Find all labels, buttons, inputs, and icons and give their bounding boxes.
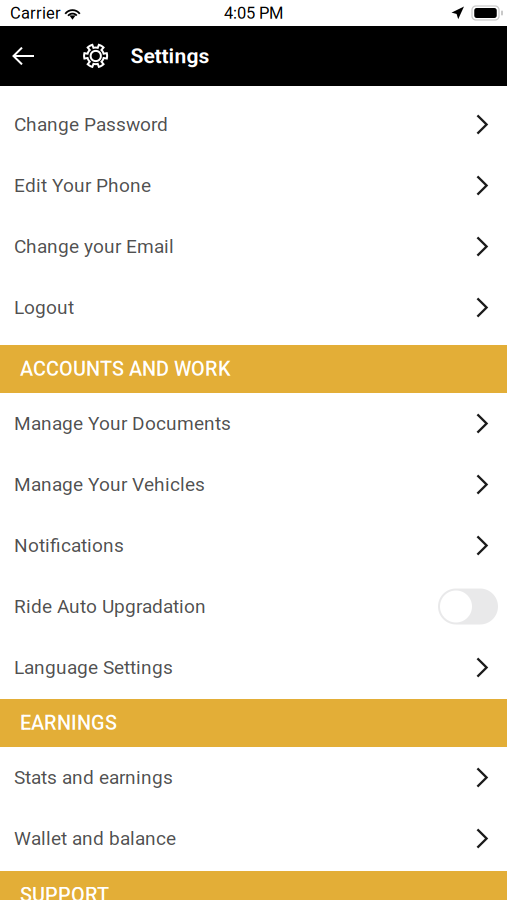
button[interactable]: Change Password: [0, 94, 507, 155]
staticText: Stats and earnings: [14, 766, 173, 789]
staticText: Settings: [130, 44, 209, 68]
staticText: Manage Your Documents: [14, 412, 231, 435]
staticText: Notifications: [14, 534, 124, 557]
staticText: SUPPORT: [20, 883, 109, 900]
button[interactable]: Stats and earnings: [0, 747, 507, 808]
button[interactable]: Notifications: [0, 515, 507, 576]
staticText: Ride Auto Upgradation: [14, 595, 206, 618]
staticText: Language Settings: [14, 656, 173, 679]
staticText: Edit Your Phone: [14, 174, 151, 197]
button[interactable]: Manage Your Documents: [0, 393, 507, 454]
staticText: Change Password: [14, 113, 168, 136]
button[interactable]: Back: [0, 26, 46, 86]
staticText: Logout: [14, 296, 74, 319]
button[interactable]: Language Settings: [0, 637, 507, 698]
button[interactable]: Manage Your Vehicles: [0, 454, 507, 515]
button[interactable]: Edit Your Phone: [0, 155, 507, 216]
staticText: ACCOUNTS AND WORK: [20, 357, 231, 381]
button[interactable]: Logout: [0, 277, 507, 338]
staticText: EARNINGS: [20, 711, 117, 735]
staticText: Manage Your Vehicles: [14, 473, 205, 496]
staticText: Carrier: [10, 3, 61, 23]
button[interactable]: Ride Auto Upgradation: [438, 588, 498, 624]
button[interactable]: Change your Email: [0, 216, 507, 277]
staticText: Wallet and balance: [14, 827, 176, 850]
button[interactable]: Wallet and balance: [0, 808, 507, 869]
staticText: Change your Email: [14, 235, 174, 258]
staticText: 4:05 PM: [224, 3, 283, 23]
